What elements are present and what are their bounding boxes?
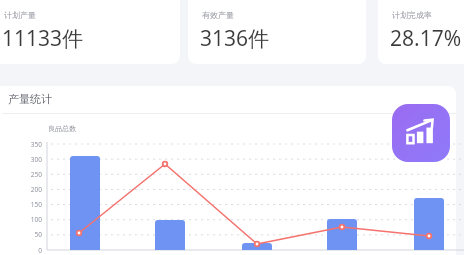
staticText: 28.17% (390, 24, 462, 53)
staticText: 产量统计 (8, 92, 52, 106)
staticText: 计划产量 (4, 10, 36, 20)
staticText: 11133件 (2, 24, 84, 53)
staticText: 150 (18, 200, 42, 209)
button[interactable]: Statistics (392, 104, 450, 162)
staticText: 50 (18, 230, 42, 239)
button[interactable]: 计划完成率 (378, 0, 464, 64)
staticText: 良品总数 (48, 124, 76, 133)
staticText: 100 (18, 215, 42, 224)
button[interactable]: 计划产量 (0, 0, 180, 64)
staticText: 3136件 (200, 24, 270, 53)
staticText: 有效产量 (202, 10, 234, 20)
staticText: 0 (18, 246, 42, 255)
staticText: 300 (18, 155, 42, 164)
staticText: 250 (18, 170, 42, 179)
button[interactable]: 有效产量 (188, 0, 366, 64)
staticText: 200 (18, 185, 42, 194)
staticText: 计划完成率 (392, 10, 432, 20)
staticText: 350 (18, 140, 42, 149)
